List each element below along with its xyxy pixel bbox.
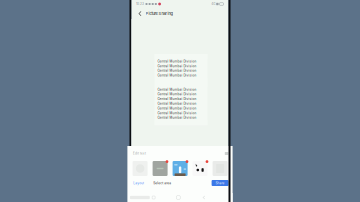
staticText: Select area <box>153 181 171 185</box>
staticText: Layout <box>133 181 144 185</box>
staticText: Central Mumbai Division <box>157 74 196 77</box>
staticText: Central Mumbai Division <box>157 102 196 105</box>
staticText: 4G <box>211 2 215 6</box>
staticText: Central Mumbai Division <box>157 116 196 120</box>
button[interactable]: Layout <box>133 179 144 187</box>
button[interactable]: Back <box>136 8 145 19</box>
button[interactable]: Back <box>201 194 208 201</box>
staticText: Central Mumbai Division <box>157 106 196 110</box>
staticText: Central Mumbai Division <box>157 97 196 101</box>
staticText: Central Mumbai Division <box>157 64 196 68</box>
staticText: 10:23 <box>136 2 144 6</box>
button[interactable]: Grid layout <box>223 150 230 157</box>
button[interactable]: Select area <box>153 179 171 187</box>
staticText: Central Mumbai Division <box>157 69 196 73</box>
button[interactable]: Home <box>175 194 182 201</box>
button[interactable]: Share <box>212 180 229 186</box>
staticText: Edit text <box>133 152 146 155</box>
staticText: Central Mumbai Division <box>157 88 196 91</box>
staticText: Picture Sharing <box>145 11 172 16</box>
staticText: Central Mumbai Division <box>157 59 196 63</box>
staticText: Central Mumbai Division <box>157 111 196 115</box>
staticText: Central Mumbai Division <box>157 92 196 96</box>
staticText: Share <box>216 181 225 185</box>
button[interactable]: Recents <box>151 194 156 201</box>
